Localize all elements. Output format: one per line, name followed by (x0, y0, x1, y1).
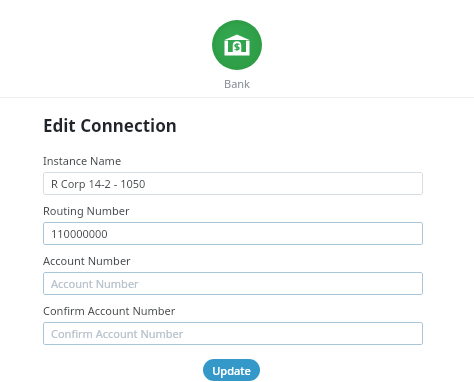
button[interactable]: 110000000 (43, 222, 423, 245)
button[interactable]: R Corp 14-2 - 1050 (43, 172, 423, 195)
button[interactable]: Bank (212, 20, 262, 91)
staticText: Routing Number (43, 203, 130, 218)
staticText: Instance Name (43, 153, 122, 168)
staticText: Account Number (43, 253, 131, 268)
staticText: Confirm Account Number (43, 303, 176, 318)
button[interactable]: Update (203, 359, 260, 381)
staticText: Edit Connection (43, 114, 177, 137)
staticText: Account Number (51, 276, 139, 291)
staticText: 110000000 (51, 226, 108, 241)
button[interactable]: Confirm Account Number (43, 322, 423, 345)
staticText: Update (212, 363, 251, 378)
staticText: Bank (224, 76, 250, 91)
staticText: R Corp 14-2 - 1050 (51, 176, 146, 191)
staticText: Confirm Account Number (51, 326, 184, 341)
button[interactable]: Account Number (43, 272, 423, 295)
